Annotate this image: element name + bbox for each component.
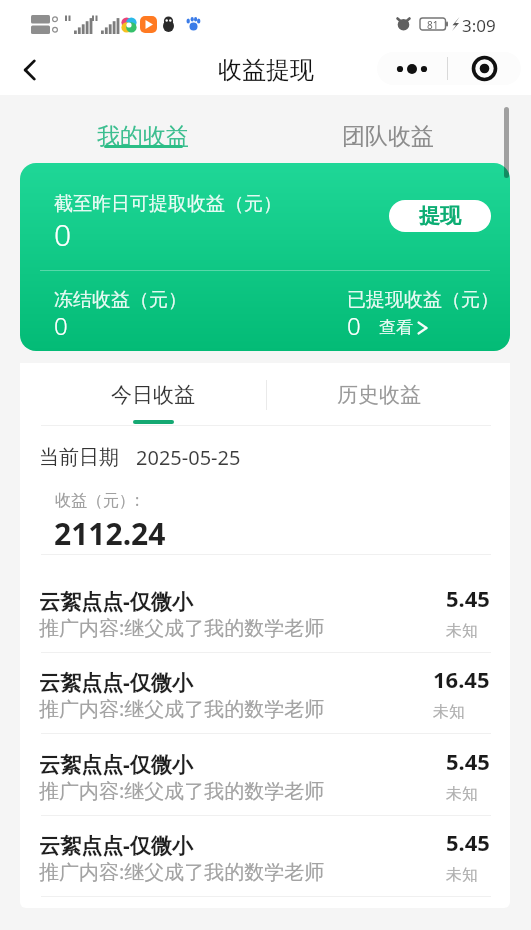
button[interactable]: Close <box>449 52 521 85</box>
staticText: 2112.24 <box>54 513 166 554</box>
button[interactable]: 云絮点点-仅微小 <box>20 750 510 816</box>
staticText: 3:09 <box>462 14 496 37</box>
staticText: 5.45 <box>446 827 490 857</box>
button[interactable]: 云絮点点-仅微小 <box>20 668 510 734</box>
button[interactable]: 云絮点点-仅微小 <box>20 831 510 897</box>
button[interactable]: 今日收益 <box>83 382 223 424</box>
staticText: 云絮点点-仅微小 <box>39 587 193 616</box>
button[interactable]: 云絮点点-仅微小 <box>20 587 510 653</box>
staticText: 未知 <box>446 784 478 804</box>
button[interactable]: 查看 <box>379 317 428 338</box>
staticText: 推广内容:继父成了我的数学老师 <box>39 858 325 885</box>
staticText: 2025-05-25 <box>136 444 241 471</box>
staticText: 未知 <box>433 702 465 722</box>
staticText: 5.45 <box>446 583 490 613</box>
staticText: 冻结收益（元） <box>54 288 187 312</box>
staticText: 收益提现 <box>218 55 314 85</box>
staticText: 查看 <box>379 317 413 338</box>
staticText: 0 <box>54 214 72 255</box>
staticText: 16.45 <box>433 664 490 694</box>
button[interactable]: 历史收益 <box>309 382 449 420</box>
staticText: 已提现收益（元） <box>347 288 499 312</box>
staticText: 历史收益 <box>337 382 421 408</box>
staticText: 81 <box>427 18 439 30</box>
staticText: 推广内容:继父成了我的数学老师 <box>39 777 325 804</box>
staticText: 我的收益 <box>97 122 189 151</box>
staticText: 云絮点点-仅微小 <box>39 831 193 860</box>
staticText: 今日收益 <box>111 382 195 408</box>
button[interactable]: Back <box>8 48 52 92</box>
staticText: 收益（元）: <box>55 489 140 511</box>
staticText: 0 <box>347 309 361 342</box>
staticText: 推广内容:继父成了我的数学老师 <box>39 695 325 722</box>
staticText: 未知 <box>446 865 478 885</box>
button[interactable]: 提现 <box>389 200 491 232</box>
button[interactable]: 我的收益 <box>68 108 218 152</box>
staticText: 提现 <box>419 203 461 229</box>
button[interactable]: More options <box>377 52 449 85</box>
staticText: 云絮点点-仅微小 <box>39 668 193 697</box>
staticText: 5.45 <box>446 746 490 776</box>
button[interactable]: 团队收益 <box>313 108 463 152</box>
staticText: 当前日期 <box>39 445 119 470</box>
staticText: 推广内容:继父成了我的数学老师 <box>39 614 325 641</box>
staticText: 团队收益 <box>342 122 434 151</box>
staticText: 未知 <box>446 621 478 641</box>
staticText: 截至昨日可提取收益（元） <box>54 192 282 216</box>
staticText: 0 <box>54 309 68 342</box>
staticText: 云絮点点-仅微小 <box>39 750 193 779</box>
